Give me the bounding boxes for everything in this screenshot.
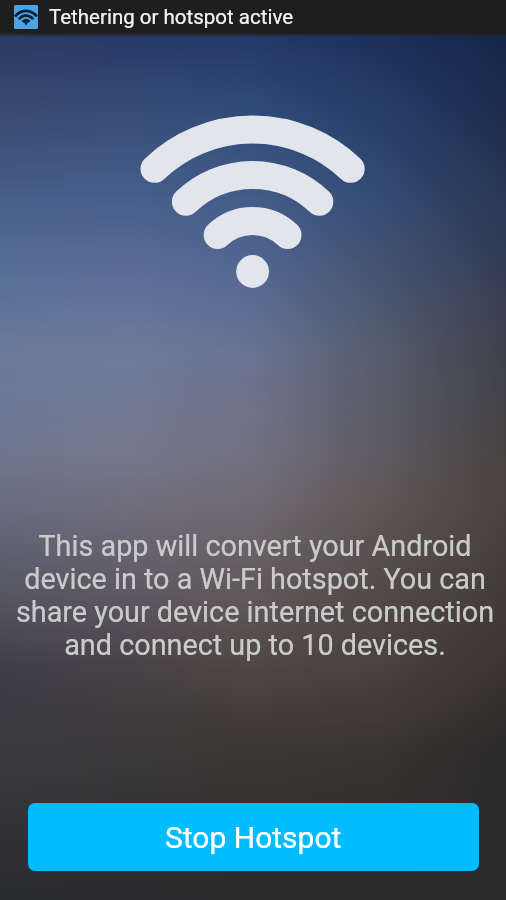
other: Hotspot active bbox=[14, 5, 38, 29]
staticText: This app will convert your Android devic… bbox=[2, 529, 506, 662]
staticText: Tethering or hotspot active bbox=[49, 5, 294, 29]
button[interactable]: Stop Hotspot bbox=[28, 803, 479, 871]
staticText: Stop Hotspot bbox=[165, 820, 342, 855]
